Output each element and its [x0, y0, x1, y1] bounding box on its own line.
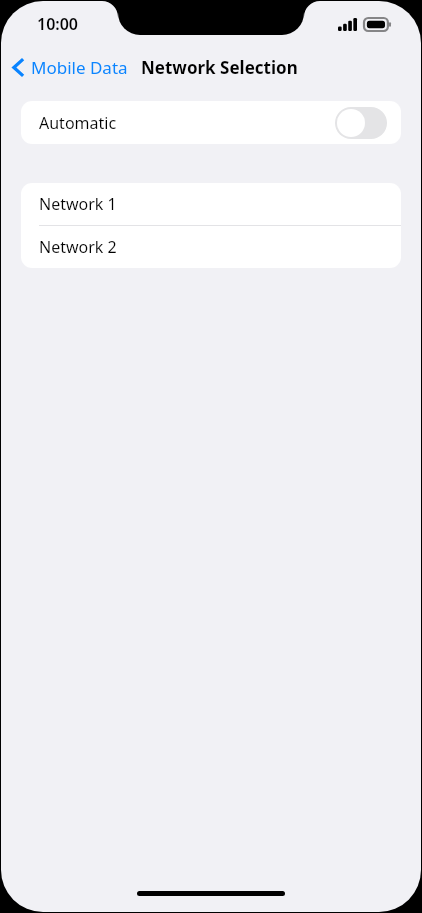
staticText: Mobile Data: [31, 56, 128, 79]
staticText: Network Selection: [141, 56, 298, 79]
staticText: 10:00: [37, 13, 79, 35]
staticText: Network 2: [39, 236, 117, 258]
staticText: Automatic: [39, 112, 117, 134]
button[interactable]: Network 1: [21, 183, 401, 225]
button[interactable]: Automatic: [21, 101, 401, 144]
button[interactable]: Network 2: [21, 226, 401, 268]
staticText: Network 1: [39, 193, 117, 215]
button[interactable]: Mobile Data: [9, 52, 132, 83]
button[interactable]: Automatic network selection toggle: [335, 107, 387, 139]
